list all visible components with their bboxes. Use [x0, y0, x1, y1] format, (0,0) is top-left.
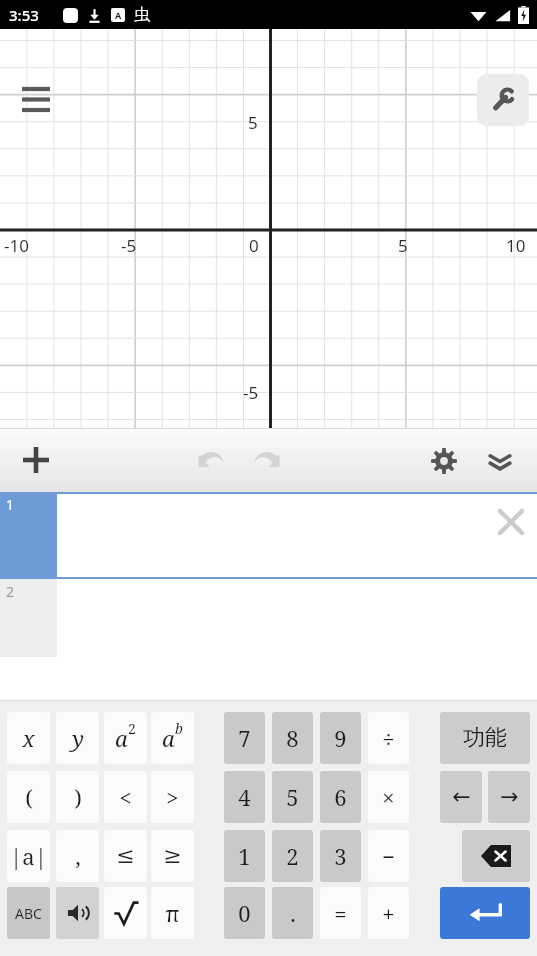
- button[interactable]: Undo: [190, 440, 232, 482]
- staticText: →: [500, 784, 519, 810]
- button[interactable]: |a|: [7, 830, 50, 882]
- staticText: 5: [248, 111, 258, 134]
- button[interactable]: 2: [272, 830, 313, 882]
- staticText: ABC: [15, 904, 42, 923]
- button[interactable]: 9: [320, 712, 361, 764]
- button[interactable]: 6: [320, 771, 361, 823]
- staticText: ): [74, 782, 82, 812]
- staticText: 功能: [463, 724, 507, 752]
- button[interactable]: x: [7, 712, 50, 764]
- staticText: ×: [382, 782, 395, 812]
- button[interactable]: −: [368, 830, 409, 882]
- button[interactable]: a: [151, 712, 194, 764]
- staticText: y: [72, 723, 84, 753]
- staticText: .: [290, 898, 296, 928]
- button[interactable]: 2: [0, 579, 57, 657]
- button[interactable]: Add expression: [14, 438, 58, 482]
- staticText: 2: [286, 841, 299, 871]
- button[interactable]: Graph settings: [477, 74, 529, 126]
- button[interactable]: ←: [440, 771, 482, 823]
- button[interactable]: ≥: [151, 830, 194, 882]
- staticText: 3:53: [9, 5, 39, 25]
- staticText: 3: [334, 841, 347, 871]
- button[interactable]: Settings: [423, 440, 465, 482]
- staticText: A: [115, 9, 122, 21]
- button[interactable]: 功能: [440, 712, 530, 764]
- button[interactable]: Redo: [246, 440, 288, 482]
- staticText: x: [22, 723, 35, 753]
- staticText: 6: [334, 782, 347, 812]
- staticText: b: [175, 719, 183, 738]
- staticText: 2: [6, 582, 15, 601]
- staticText: 2: [128, 719, 136, 738]
- button[interactable]: Clear expression: [57, 492, 537, 579]
- staticText: ≤: [116, 843, 135, 869]
- button[interactable]: =: [320, 887, 361, 939]
- button[interactable]: Clear expression: [491, 502, 531, 542]
- button[interactable]: 1: [224, 830, 265, 882]
- button[interactable]: <: [104, 771, 147, 823]
- button[interactable]: y: [56, 712, 99, 764]
- button[interactable]: Sound: [56, 887, 99, 939]
- button[interactable]: 5: [272, 771, 313, 823]
- staticText: ≥: [163, 843, 182, 869]
- button[interactable]: .: [272, 887, 313, 939]
- staticText: 0: [249, 234, 259, 257]
- button[interactable]: a: [104, 712, 147, 764]
- staticText: ÷: [382, 723, 395, 753]
- staticText: +: [382, 898, 395, 928]
- staticText: 10: [506, 234, 526, 257]
- staticText: π: [165, 898, 180, 928]
- staticText: a: [115, 723, 128, 753]
- button[interactable]: ): [56, 771, 99, 823]
- staticText: 1: [6, 495, 15, 514]
- button[interactable]: ×: [368, 771, 409, 823]
- staticText: <: [119, 782, 132, 812]
- staticText: a: [162, 723, 175, 753]
- button[interactable]: +: [368, 887, 409, 939]
- staticText: ,: [75, 841, 81, 871]
- staticText: 9: [334, 723, 347, 753]
- button[interactable]: ≤: [104, 830, 147, 882]
- staticText: 8: [286, 723, 299, 753]
- button[interactable]: ABC: [7, 887, 50, 939]
- staticText: 虫: [134, 5, 150, 25]
- staticText: 5: [286, 782, 299, 812]
- staticText: 4: [238, 782, 251, 812]
- button[interactable]: →: [488, 771, 530, 823]
- button[interactable]: 3: [320, 830, 361, 882]
- button[interactable]: Backspace: [462, 830, 530, 882]
- staticText: =: [334, 898, 347, 928]
- button[interactable]: ÷: [368, 712, 409, 764]
- staticText: >: [166, 782, 179, 812]
- staticText: -5: [121, 234, 137, 257]
- staticText: −: [382, 841, 395, 871]
- staticText: -10: [4, 234, 29, 257]
- staticText: -5: [243, 381, 259, 404]
- button[interactable]: π: [151, 887, 194, 939]
- staticText: (: [25, 782, 33, 812]
- other: Sound: [66, 901, 90, 925]
- button[interactable]: 8: [272, 712, 313, 764]
- button[interactable]: 7: [224, 712, 265, 764]
- staticText: 0: [238, 898, 251, 928]
- button[interactable]: >: [151, 771, 194, 823]
- staticText: |a|: [10, 841, 47, 871]
- button[interactable]: Collapse: [479, 440, 521, 482]
- button[interactable]: Enter: [440, 887, 530, 939]
- button[interactable]: Menu: [16, 79, 56, 119]
- button[interactable]: [104, 887, 147, 939]
- button[interactable]: (: [7, 771, 50, 823]
- button[interactable]: ,: [56, 830, 99, 882]
- staticText: 1: [238, 841, 251, 871]
- button[interactable]: 4: [224, 771, 265, 823]
- staticText: 7: [238, 723, 251, 753]
- staticText: ←: [452, 784, 471, 810]
- button[interactable]: 0: [224, 887, 265, 939]
- staticText: 5: [398, 234, 408, 257]
- button[interactable]: 1: [0, 492, 57, 579]
